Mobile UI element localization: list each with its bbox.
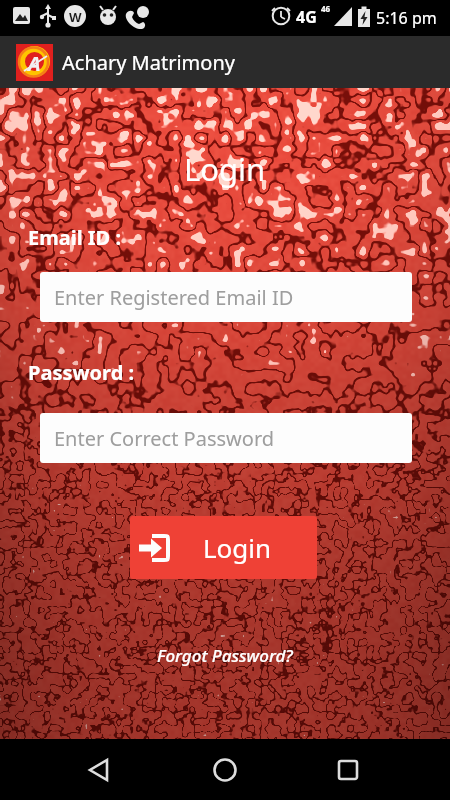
staticText: Login [184,148,266,190]
staticText: Login [203,530,272,565]
button[interactable]: A [16,44,53,81]
staticText: Achary Matrimony [62,49,235,76]
staticText: Enter Registered Email ID [54,284,294,311]
button[interactable] [150,739,300,800]
staticText: Password : [28,359,135,386]
staticText: 4G [296,6,317,28]
button[interactable] [0,739,150,800]
staticText: Enter Correct Password [54,425,275,452]
button[interactable]: Enter Registered Email ID [40,272,412,322]
button[interactable] [300,739,450,800]
button[interactable]: Forgot Password? [157,644,293,667]
staticText: A [28,50,41,77]
staticText: 5:16 pm [376,7,437,29]
staticText: W [69,8,82,26]
button[interactable]: Login [130,516,317,579]
button[interactable]: Enter Correct Password [40,413,412,463]
staticText: 46 [321,3,331,14]
staticText: Email ID : [28,224,122,251]
